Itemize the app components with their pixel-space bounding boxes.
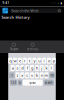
staticText: f [27, 65, 28, 71]
button[interactable]: g [30, 65, 34, 71]
staticText: Settings [27, 47, 38, 51]
staticText: v [31, 73, 33, 78]
button[interactable]: q [8, 58, 12, 64]
button[interactable]: w [13, 58, 17, 64]
button[interactable]: m [44, 72, 48, 78]
staticText: Search the Web [11, 8, 38, 13]
staticText: w [14, 58, 17, 63]
button[interactable]: z [15, 72, 20, 78]
button[interactable]: a [11, 65, 15, 71]
staticText: ⌫ [50, 74, 54, 77]
button[interactable]: c [25, 72, 29, 78]
staticText: h [36, 65, 38, 71]
staticText: Shazam [10, 47, 18, 51]
staticText: u [38, 58, 40, 63]
button[interactable]: t [27, 58, 32, 64]
button[interactable]: space [23, 80, 43, 86]
staticText: space [29, 81, 36, 84]
button[interactable]: d [20, 65, 24, 71]
staticText: j [41, 65, 42, 71]
staticText: g [31, 65, 33, 71]
button[interactable]: h [35, 65, 39, 71]
staticText: e [19, 58, 21, 63]
button[interactable]: Shazam [7, 43, 20, 51]
button[interactable]: n [40, 72, 44, 78]
staticText: s [16, 65, 18, 71]
button[interactable]: b [35, 72, 39, 78]
button[interactable]: 123 [10, 80, 17, 86]
staticText: z [16, 73, 18, 78]
staticText: x [21, 73, 23, 78]
button[interactable]: v [30, 72, 34, 78]
button[interactable]: u [37, 58, 41, 64]
button[interactable]: ⇧ [9, 72, 15, 78]
button[interactable]: r [23, 58, 27, 64]
staticText: 123 [10, 81, 16, 84]
button[interactable]: k [44, 65, 49, 71]
staticText: d [21, 65, 23, 71]
staticText: q [9, 58, 11, 63]
staticText: t [29, 58, 30, 63]
button[interactable]: f [25, 65, 29, 71]
button[interactable]: Search the Web [10, 8, 62, 13]
button[interactable]: j [40, 65, 44, 71]
staticText: m [44, 73, 48, 78]
staticText: o [48, 58, 50, 63]
staticText: ⇧ [11, 74, 13, 77]
staticText: ◦◦◦ ⌁ ▮ [51, 1, 62, 4]
button[interactable]: e [18, 58, 22, 64]
staticText: ☺ [18, 81, 21, 84]
button[interactable]: Search engine [2, 8, 8, 14]
button[interactable]: s [15, 65, 20, 71]
button[interactable]: ⌫ [49, 72, 55, 78]
staticText: l [51, 65, 52, 71]
button[interactable]: ☺ [18, 80, 22, 86]
button[interactable]: o [47, 58, 51, 64]
button[interactable]: i [42, 58, 46, 64]
button[interactable]: Settings [26, 43, 39, 51]
button[interactable]: x [20, 72, 24, 78]
button[interactable]: p [52, 58, 56, 64]
staticText: i [44, 58, 45, 63]
staticText: k [45, 65, 47, 71]
staticText: Search History [2, 15, 30, 20]
button[interactable]: y [32, 58, 36, 64]
staticText: y [33, 58, 35, 63]
staticText: r [24, 58, 26, 63]
staticText: 9:41 [2, 1, 9, 5]
staticText: c [26, 73, 28, 78]
staticText: p [53, 58, 55, 63]
staticText: search [45, 81, 53, 84]
staticText: a [12, 65, 14, 71]
staticText: b [36, 73, 38, 78]
staticText: n [41, 73, 43, 78]
button[interactable]: search [43, 80, 54, 86]
button[interactable]: l [49, 65, 53, 71]
